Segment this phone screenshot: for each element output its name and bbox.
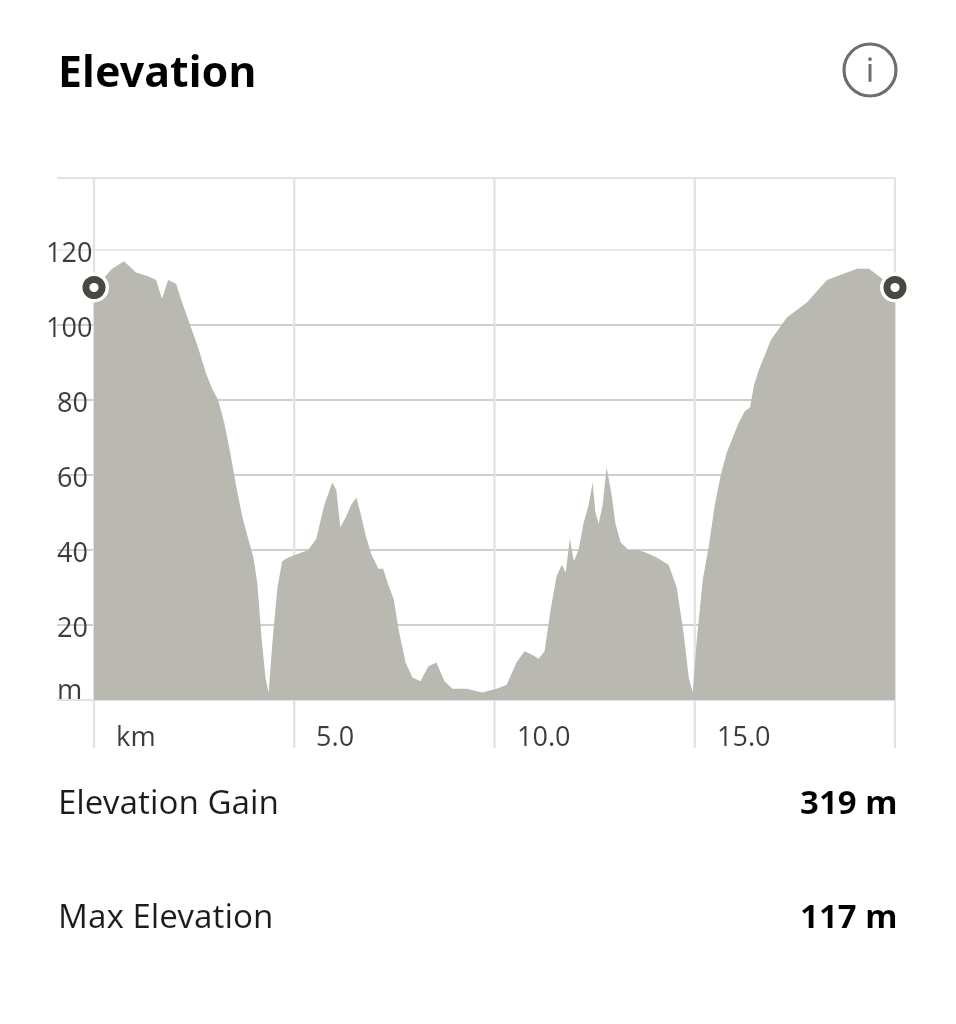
button[interactable]: Max Elevation [0,850,956,980]
staticText: Elevation Gain [58,779,279,824]
staticText: 5.0 [316,717,355,754]
staticText: 319 m [800,779,898,824]
staticText: km [116,717,156,754]
staticText: 10.0 [517,717,571,754]
staticText: 20 [57,608,88,645]
staticText: 80 [57,383,88,420]
staticText: m [57,670,83,707]
staticText: 15.0 [717,717,771,754]
button[interactable]: Elevation Gain [0,752,956,850]
staticText: 120 [46,233,93,270]
staticText: 100 [46,308,93,345]
staticText: 60 [57,458,88,495]
staticText: Elevation [58,41,257,100]
staticText: 40 [57,533,88,570]
staticText: 117 m [800,893,898,938]
staticText: Max Elevation [58,893,274,938]
button[interactable]: Information [842,42,898,98]
